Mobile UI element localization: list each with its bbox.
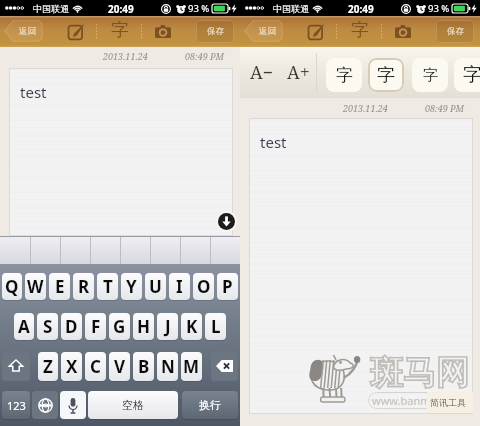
button[interactable]: P [217, 273, 238, 300]
staticText: X [66, 355, 78, 378]
button[interactable]: Camera [391, 19, 415, 43]
staticText: S [43, 315, 53, 338]
button[interactable]: Z [38, 352, 58, 381]
staticText: 2013.11.24 [343, 102, 388, 114]
button[interactable]: B [133, 352, 154, 381]
staticText: 123 [7, 398, 26, 413]
button[interactable]: U [145, 273, 166, 300]
button[interactable]: L [205, 313, 226, 340]
staticText: 字 [336, 65, 353, 86]
staticText: 斑马网 [370, 352, 469, 394]
button[interactable]: Font [348, 18, 372, 42]
button[interactable]: G [109, 313, 130, 340]
button[interactable]: 字 [326, 58, 362, 92]
button[interactable]: T [97, 273, 118, 300]
staticText: 20:49 [108, 2, 134, 16]
staticText: 简讯工具 [430, 397, 466, 408]
button[interactable]: C [85, 352, 106, 381]
staticText: A+ [287, 60, 310, 85]
button[interactable]: A [14, 313, 34, 340]
button[interactable]: Scroll down [218, 213, 235, 230]
staticText: Z [43, 355, 53, 378]
button[interactable]: Q [2, 273, 22, 300]
staticText: W [27, 275, 44, 298]
staticText: 返回 [259, 26, 276, 37]
staticText: 中国联通 [33, 3, 69, 14]
staticText: 换行 [199, 398, 221, 412]
staticText: P [222, 275, 233, 298]
staticText: 2013.11.24 [103, 50, 148, 62]
button[interactable] [211, 237, 240, 264]
button[interactable]: E [49, 273, 70, 300]
staticText: B [138, 355, 150, 378]
button[interactable]: 返回 [4, 20, 43, 42]
staticText: test [260, 132, 287, 152]
staticText: H [137, 315, 151, 338]
button[interactable]: 保存 [196, 20, 234, 43]
button[interactable] [61, 237, 90, 264]
staticText: I [176, 275, 183, 298]
button[interactable] [31, 237, 60, 264]
button[interactable]: O [193, 273, 214, 300]
button[interactable]: 字 [412, 58, 448, 92]
button[interactable]: X [61, 352, 82, 381]
staticText: 93 % [188, 2, 210, 15]
staticText: 20:49 [348, 2, 374, 16]
button[interactable]: I [169, 273, 190, 300]
staticText: N [161, 355, 175, 378]
staticText: R [78, 275, 90, 298]
button[interactable]: V [109, 352, 130, 381]
button[interactable]: Font [108, 18, 132, 42]
button[interactable]: Y [121, 273, 142, 300]
staticText: Y [126, 275, 137, 298]
button[interactable]: Backspace [211, 351, 238, 381]
staticText: T [103, 275, 113, 298]
staticText: M [183, 355, 200, 378]
staticText: 08:49 PM [425, 102, 465, 114]
button[interactable]: Language [32, 391, 58, 419]
button[interactable]: Shift [2, 351, 30, 381]
button[interactable]: 换行 [182, 391, 238, 419]
staticText: L [211, 315, 221, 338]
staticText: 保存 [207, 26, 224, 37]
button[interactable]: 保存 [436, 20, 474, 43]
button[interactable]: N [157, 352, 178, 381]
button[interactable]: Dictation [60, 391, 86, 419]
button[interactable]: F [85, 313, 106, 340]
button[interactable]: Camera [151, 19, 175, 43]
button[interactable] [151, 237, 180, 264]
staticText: A− [250, 60, 274, 85]
button[interactable]: K [181, 313, 202, 340]
button[interactable] [181, 237, 210, 264]
staticText: C [90, 355, 101, 378]
button[interactable]: S [37, 313, 58, 340]
button[interactable]: 字 [368, 58, 404, 92]
button[interactable]: 123 [2, 391, 30, 419]
button[interactable] [91, 237, 120, 264]
staticText: U [149, 275, 162, 298]
button[interactable]: J [157, 313, 178, 340]
staticText: E [55, 275, 65, 298]
staticText: O [197, 275, 211, 298]
staticText: 字 [463, 63, 480, 87]
button[interactable]: M [181, 352, 202, 381]
button[interactable]: New note [304, 19, 328, 43]
button[interactable]: 返回 [244, 20, 283, 42]
button[interactable]: A+ [280, 55, 316, 89]
button[interactable]: A− [244, 55, 280, 89]
button[interactable]: 空格 [88, 391, 178, 419]
button[interactable] [121, 237, 150, 264]
staticText: J [165, 315, 171, 338]
staticText: Q [5, 275, 19, 298]
button[interactable]: H [133, 313, 154, 340]
staticText: A [18, 315, 30, 338]
button[interactable]: R [73, 273, 94, 300]
staticText: 返回 [19, 26, 36, 37]
button[interactable]: W [25, 273, 46, 300]
staticText: G [113, 315, 126, 338]
button[interactable]: New note [64, 19, 88, 43]
button[interactable]: D [61, 313, 82, 340]
button[interactable]: 字 [454, 58, 480, 92]
staticText: V [114, 355, 126, 378]
button[interactable] [0, 237, 30, 264]
